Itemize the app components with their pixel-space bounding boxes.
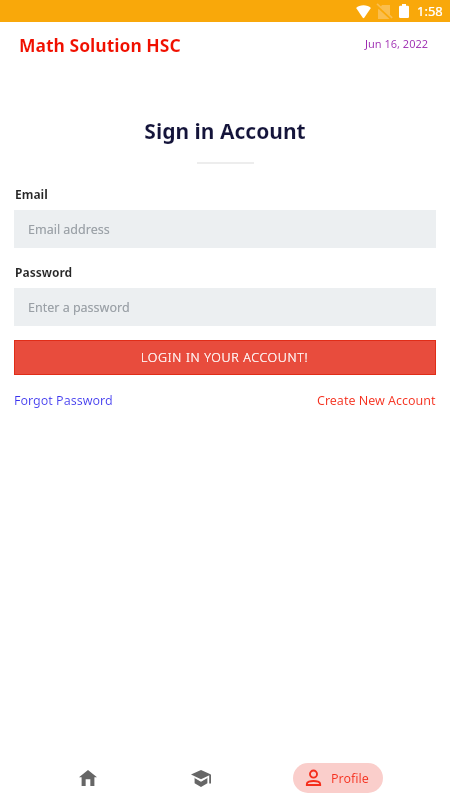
staticText: Math Solution HSC <box>19 33 181 57</box>
button[interactable]: Home <box>58 756 118 800</box>
staticText: Enter a password <box>28 299 130 316</box>
button[interactable]: Forgot Password <box>8 386 119 415</box>
button[interactable]: LOGIN IN YOUR ACCOUNT! <box>14 340 436 375</box>
staticText: Email <box>15 186 48 202</box>
staticText: Password <box>15 264 73 280</box>
button[interactable]: Courses <box>171 756 231 800</box>
staticText: Jun 16, 2022 <box>365 36 429 51</box>
staticText: Email address <box>28 221 110 238</box>
button[interactable]: Profile <box>293 763 383 793</box>
button[interactable]: Create New Account <box>311 386 442 415</box>
staticText: Forgot Password <box>14 392 113 409</box>
staticText: Create New Account <box>317 392 436 409</box>
button[interactable]: Enter a password <box>14 288 436 326</box>
staticText: Profile <box>331 770 369 787</box>
staticText: Sign in Account <box>144 117 306 146</box>
button[interactable]: Email address <box>14 210 436 248</box>
staticText: LOGIN IN YOUR ACCOUNT! <box>141 349 309 366</box>
staticText: 1:58 <box>417 2 443 20</box>
